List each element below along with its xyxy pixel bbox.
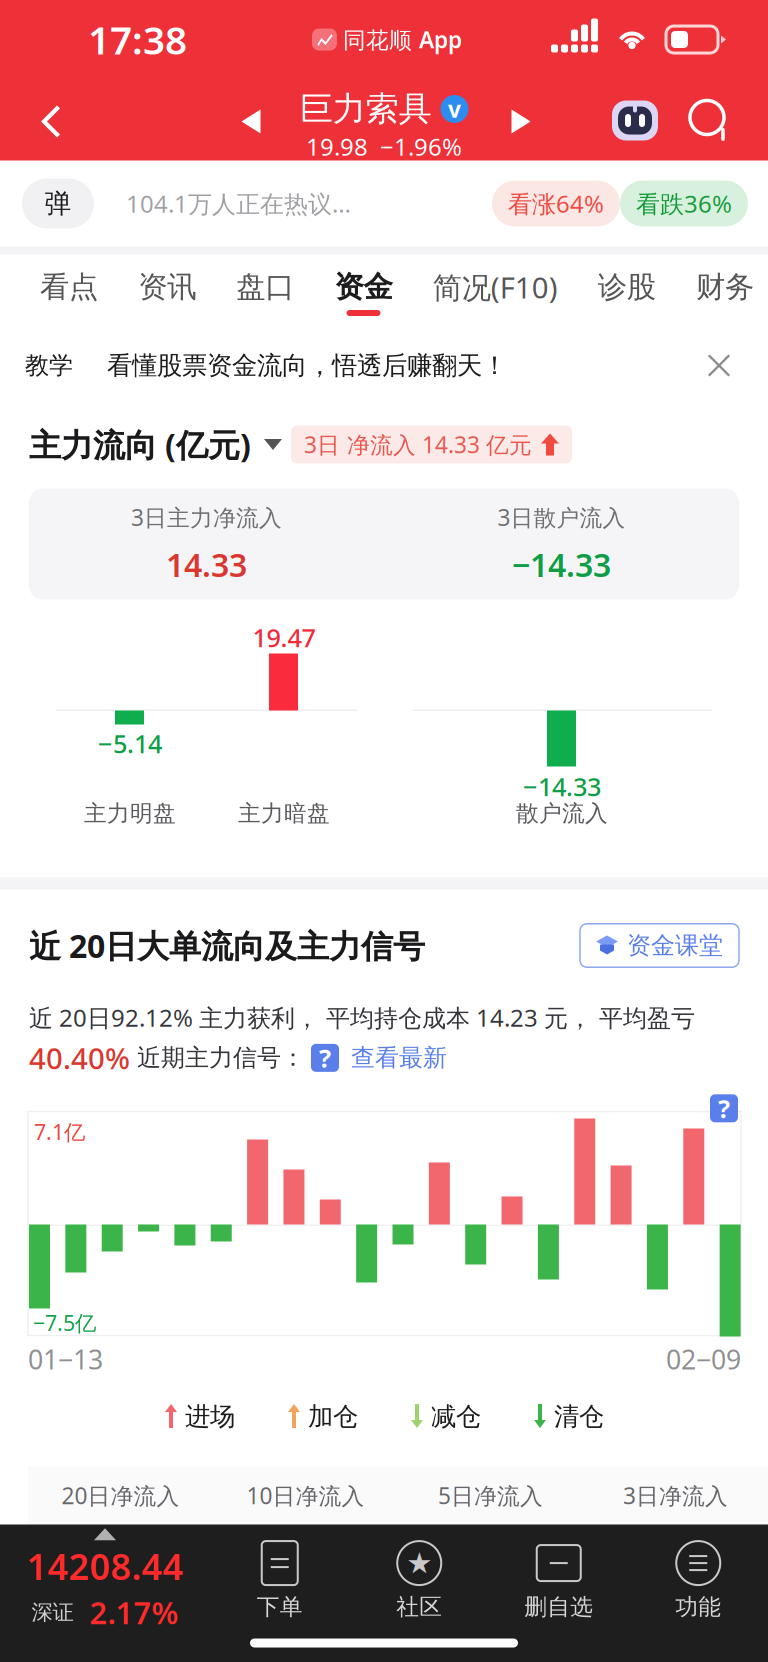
staticText: 近期主力信号： xyxy=(130,1043,305,1073)
button[interactable]: 下单 xyxy=(210,1524,349,1636)
staticText: 近 20日大单流向及主力信号 xyxy=(29,924,425,967)
button[interactable]: 5日净流入 xyxy=(398,1466,583,1524)
button[interactable]: Shenzhen index xyxy=(0,1524,210,1636)
staticText: ? xyxy=(319,1041,331,1075)
button[interactable]: AI assistant xyxy=(607,92,663,148)
button[interactable]: Back xyxy=(19,90,81,152)
staticText: v xyxy=(448,94,461,124)
staticText: 看涨64% xyxy=(508,188,604,219)
staticText: 3日净流入 xyxy=(623,1480,728,1510)
staticText: 14208.44 xyxy=(26,1542,183,1590)
staticText: 看懂股票资金流向，悟透后赚翻天！ xyxy=(107,350,507,381)
button[interactable]: 3日净流入 xyxy=(583,1466,768,1524)
staticText: 7.1亿 xyxy=(34,1117,85,1146)
staticText: 19.47 xyxy=(252,620,315,654)
staticText: 看跌36% xyxy=(636,188,732,219)
button[interactable]: 看点 xyxy=(40,254,98,330)
staticText: ? xyxy=(718,1091,730,1125)
staticText: 同花顺 App xyxy=(343,24,462,54)
staticText: 01−13 xyxy=(28,1341,103,1377)
staticText: 删自选 xyxy=(524,1593,593,1621)
staticText: 3日散户流入 xyxy=(497,502,625,532)
staticText: 巨力索具 xyxy=(299,88,431,129)
staticText: 5日净流入 xyxy=(438,1480,543,1510)
staticText: 主力暗盘 xyxy=(238,799,330,827)
staticText: 20日净流入 xyxy=(61,1480,179,1510)
staticText: 3日主力净流入 xyxy=(131,502,282,532)
button[interactable]: 诊股 xyxy=(598,254,656,330)
button[interactable]: 教学 xyxy=(0,330,768,400)
staticText: 10日净流入 xyxy=(246,1480,364,1510)
staticText: −14.33 xyxy=(523,769,601,803)
staticText: 弹 xyxy=(44,187,71,220)
button[interactable]: 财务 xyxy=(696,254,754,330)
staticText: 104.1万人正在热议… xyxy=(126,188,351,219)
staticText: 40.40% xyxy=(29,1038,130,1077)
button[interactable]: 查看最新 xyxy=(351,1043,447,1073)
staticText: 17:38 xyxy=(88,14,187,65)
staticText: 诊股 xyxy=(598,269,656,305)
button[interactable]: Previous stock xyxy=(223,93,279,149)
staticText: 14.33 xyxy=(166,543,247,586)
staticText: −14.33 xyxy=(512,543,611,586)
staticText: 资金课堂 xyxy=(627,931,723,960)
staticText: 财务 xyxy=(696,269,754,305)
button[interactable]: 资金课堂 xyxy=(580,924,739,967)
button[interactable]: Chart help xyxy=(710,1091,738,1125)
staticText: 资讯 xyxy=(138,269,196,305)
staticText: 主力明盘 xyxy=(84,799,176,827)
staticText: 盘口 xyxy=(236,269,294,305)
button[interactable]: 简况(F10) xyxy=(433,254,558,330)
staticText: 清仓 xyxy=(554,1401,604,1432)
button[interactable]: 资金 xyxy=(334,254,392,330)
staticText: 查看最新 xyxy=(351,1043,447,1073)
button[interactable]: Next stock xyxy=(493,93,549,149)
button[interactable]: 10日净流入 xyxy=(213,1466,398,1524)
staticText: 近 20日92.12% 主力获利， 平均持仓成本 14.23 元， 平均盈亏 xyxy=(29,1001,695,1033)
button[interactable]: 资讯 xyxy=(138,254,196,330)
button[interactable]: Danmaku toggle xyxy=(22,178,94,228)
button[interactable]: 盘口 xyxy=(236,254,294,330)
button[interactable]: ★ xyxy=(349,1524,489,1636)
staticText: 加仓 xyxy=(308,1401,358,1432)
button[interactable]: 删自选 xyxy=(489,1524,628,1636)
staticText: 下单 xyxy=(257,1593,303,1621)
staticText: 主力流向 (亿元) xyxy=(29,423,251,466)
staticText: 看点 xyxy=(40,269,98,305)
button[interactable]: 功能 xyxy=(628,1524,768,1636)
button[interactable]: Search xyxy=(683,93,737,147)
staticText: −5.14 xyxy=(98,726,162,760)
staticText: 深证 xyxy=(31,1599,73,1625)
staticText: 进场 xyxy=(185,1401,235,1432)
staticText: 3日 净流入 14.33 亿元 xyxy=(304,429,532,459)
staticText: 功能 xyxy=(675,1593,721,1621)
staticText: 社区 xyxy=(396,1593,442,1621)
staticText: 2.17% xyxy=(89,1592,178,1633)
button[interactable]: 20日净流入 xyxy=(28,1466,213,1524)
staticText: 02−09 xyxy=(666,1341,741,1377)
staticText: 19.98 −1.96% xyxy=(306,130,462,162)
staticText: −7.5亿 xyxy=(33,1308,96,1337)
staticText: 资金 xyxy=(334,269,392,305)
staticText: 减仓 xyxy=(431,1401,481,1432)
staticText: 简况(F10) xyxy=(433,267,558,306)
staticText: 散户流入 xyxy=(516,799,608,827)
staticText: 教学 xyxy=(25,351,73,380)
staticText: ★ xyxy=(406,1546,432,1580)
